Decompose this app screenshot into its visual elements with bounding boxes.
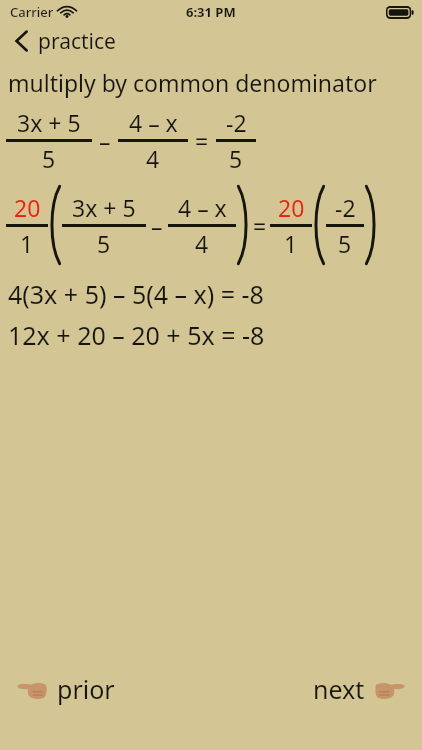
- staticText: =: [195, 125, 209, 156]
- staticText: 5: [338, 228, 352, 259]
- button[interactable]: prior: [12, 665, 120, 713]
- staticText: multiply by common denominator: [8, 67, 417, 98]
- staticText: -2: [335, 192, 356, 223]
- staticText: 3x + 5: [72, 192, 136, 223]
- button[interactable]: Back to practice: [0, 24, 422, 58]
- staticText: prior: [57, 672, 115, 706]
- staticText: 12x + 20 – 20 + 5x = -8: [8, 318, 265, 352]
- staticText: –: [151, 210, 163, 241]
- staticText: 3x + 5: [17, 107, 81, 138]
- staticText: 5: [42, 143, 56, 174]
- staticText: 20: [278, 192, 305, 223]
- staticText: 6:31 PM: [186, 3, 236, 21]
- staticText: 4 – x: [178, 192, 227, 223]
- staticText: =: [253, 210, 267, 241]
- staticText: 4 – x: [129, 107, 178, 138]
- staticText: 5: [97, 228, 111, 259]
- button[interactable]: next: [308, 665, 410, 713]
- staticText: Carrier: [10, 3, 54, 21]
- staticText: 4(3x + 5) – 5(4 – x) = -8: [8, 277, 264, 311]
- staticText: 4: [146, 143, 160, 174]
- staticText: 4: [195, 228, 209, 259]
- staticText: 1: [284, 228, 298, 259]
- staticText: 5: [229, 143, 243, 174]
- staticText: practice: [38, 27, 116, 56]
- staticText: 20: [14, 192, 41, 223]
- staticText: -2: [226, 107, 247, 138]
- staticText: –: [99, 125, 111, 156]
- staticText: next: [313, 672, 365, 706]
- staticText: 1: [20, 228, 34, 259]
